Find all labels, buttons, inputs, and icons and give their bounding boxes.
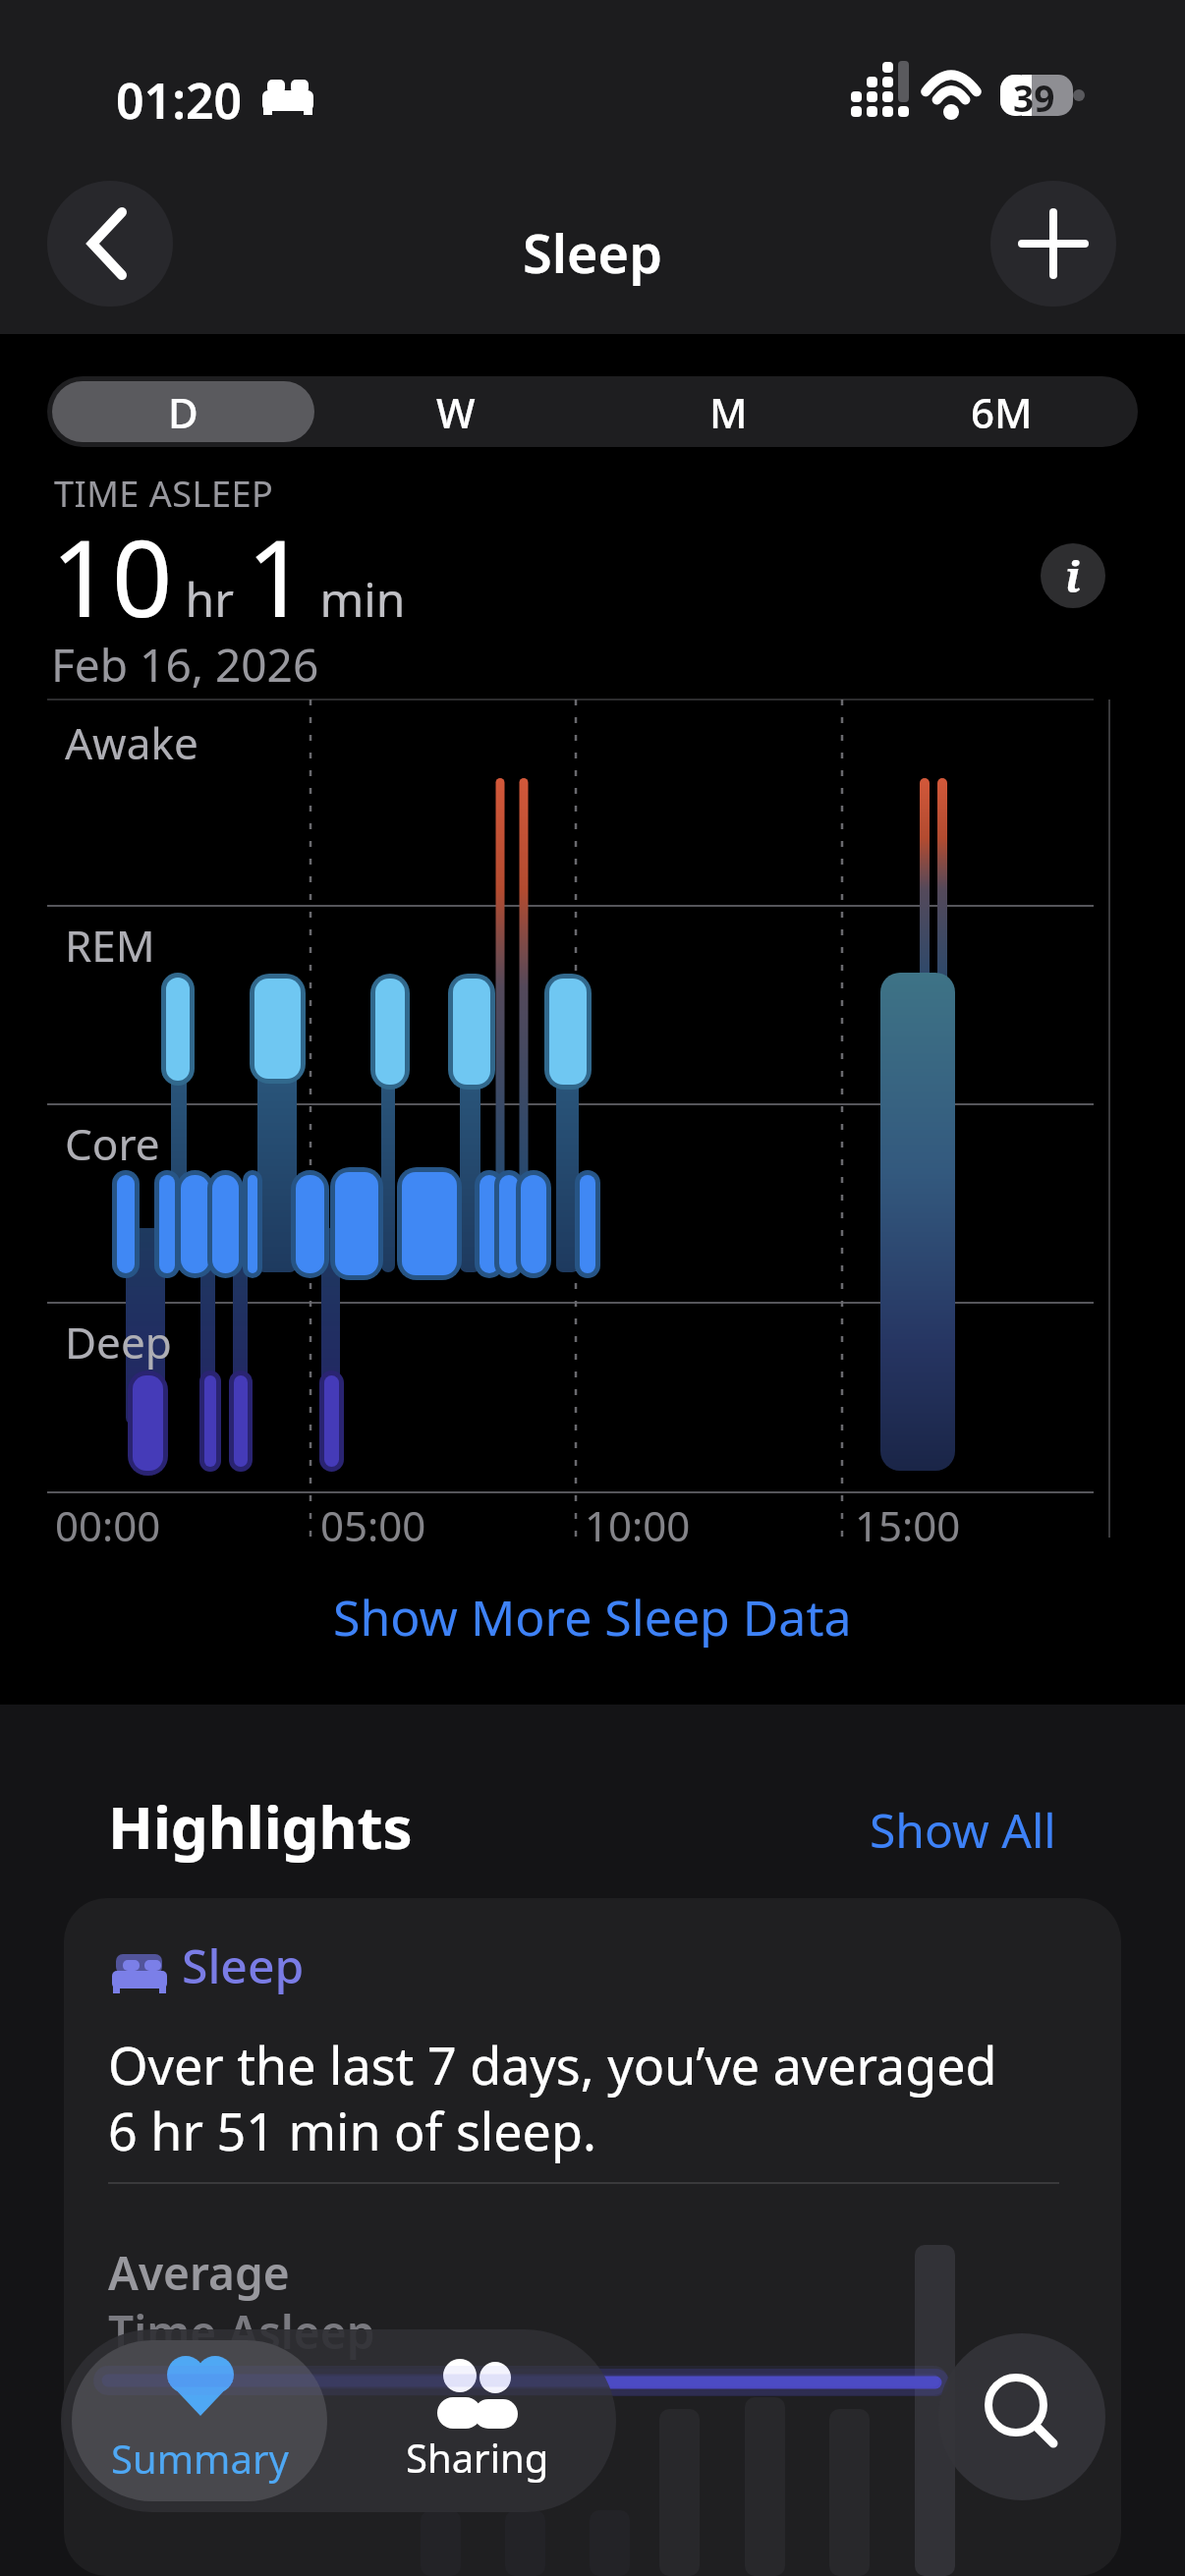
button[interactable]: W [324,381,587,442]
staticText: Sharing [406,2431,549,2484]
staticText: min [308,567,406,631]
button[interactable]: i [1041,543,1105,608]
button[interactable] [990,181,1116,307]
staticText: Time Asleep [108,2301,375,2363]
staticText: 01:20 [116,67,243,134]
staticText: Average [108,2242,290,2304]
staticText: Highlights [108,1786,413,1867]
staticText: hr [173,567,247,631]
staticText: Feb 16, 2026 [51,634,319,696]
staticText: Deep [65,1313,172,1372]
button[interactable] [938,2333,1105,2500]
button[interactable]: Show All [870,1798,1056,1862]
button[interactable]: Sharing [338,2329,616,2512]
button[interactable]: Summary [72,2340,327,2501]
button[interactable]: M [596,381,860,442]
staticText: 39 [1013,73,1055,122]
staticText: Sleep [182,1933,305,1997]
staticText: M [709,384,748,440]
staticText: i [1065,546,1081,605]
button[interactable] [47,181,173,307]
staticText: 6M [971,384,1033,440]
staticText: Awake [65,713,198,772]
staticText: 1 [247,504,308,648]
button[interactable]: 6M [870,381,1133,442]
staticText: 05:00 [320,1497,426,1553]
staticText: 15:00 [855,1497,961,1553]
staticText: TIME ASLEEP [54,470,274,518]
button[interactable]: Show More Sleep Data [333,1584,852,1651]
staticText: Over the last 7 days, you’ve averaged 6 … [108,2030,997,2165]
staticText: 00:00 [55,1497,161,1553]
staticText: Sleep [523,216,662,289]
staticText: REM [65,916,155,975]
staticText: Core [65,1114,160,1173]
button[interactable] [64,1898,1121,2576]
button[interactable]: D [52,381,314,442]
staticText: Summary [111,2432,289,2485]
staticText: 10 [51,504,173,648]
staticText: D [168,384,198,440]
staticText: 10:00 [585,1497,691,1553]
staticText: W [436,384,476,440]
